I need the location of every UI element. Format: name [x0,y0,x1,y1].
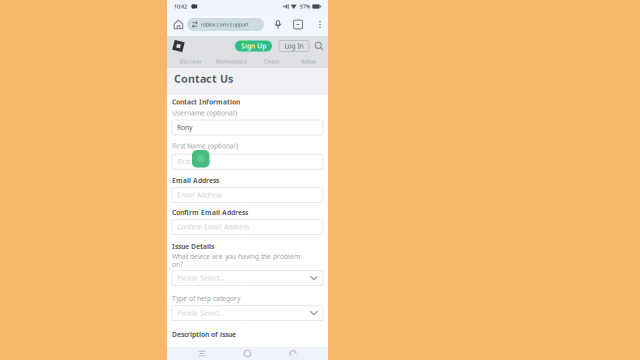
staticText: Email Address [172,176,219,185]
button[interactable]: Rony [172,120,323,135]
staticText: Discover [179,58,201,65]
staticText: Confirm Email Address [172,208,248,217]
staticText: First Name (optional) [172,142,238,150]
staticText: Please Select... [177,309,225,317]
staticText: Contact Information [172,98,240,106]
staticText: Contact Us [174,71,233,86]
button[interactable]: Home [232,347,262,360]
staticText: Create [263,58,279,65]
staticText: First Name [177,157,211,166]
button[interactable]: Back [278,347,308,360]
staticText: What device are you having the problem [172,252,300,261]
button[interactable]: Log In [279,40,309,51]
staticText: Robux [301,58,316,65]
staticText: 10:42 [174,3,187,10]
staticText: Username (optional) [172,109,237,117]
staticText: Issue Details [172,242,214,251]
staticText: Confirm Email Address [177,223,249,231]
button[interactable]: Email Address [172,187,323,202]
staticText: 97% [300,3,311,10]
staticText: Email Address [177,191,222,199]
button[interactable]: First Name [172,154,323,169]
button[interactable]: Roblox home [169,36,188,55]
button[interactable]: Please Select... [172,270,323,285]
button[interactable]: Voice search [270,13,286,36]
staticText: Marketplace [216,58,247,65]
button[interactable]: Confirm Email Address [172,219,323,234]
button[interactable]: Marketplace [210,55,252,67]
staticText: Log In [284,42,303,50]
staticText: Rony [177,123,192,132]
button[interactable]: Create [252,55,290,67]
staticText: roblox.com/support [201,21,249,28]
staticText: Type of help category [172,294,240,303]
button[interactable]: Robux [290,55,326,67]
button[interactable]: Sign Up [235,40,272,51]
button[interactable]: Please Select... [172,305,323,320]
button[interactable]: Home [170,13,187,36]
button[interactable]: roblox.com/support [187,18,264,31]
button[interactable]: Recent apps [187,347,217,360]
staticText: Please Select... [177,274,225,282]
button[interactable]: More options [314,13,326,36]
button[interactable]: Search [313,39,325,53]
button[interactable]: Open tabs [290,13,306,36]
staticText: Description of issue [172,330,236,339]
button[interactable]: Discover [170,55,210,67]
staticText: Sign Up [241,42,266,50]
staticText: on? [172,260,183,269]
